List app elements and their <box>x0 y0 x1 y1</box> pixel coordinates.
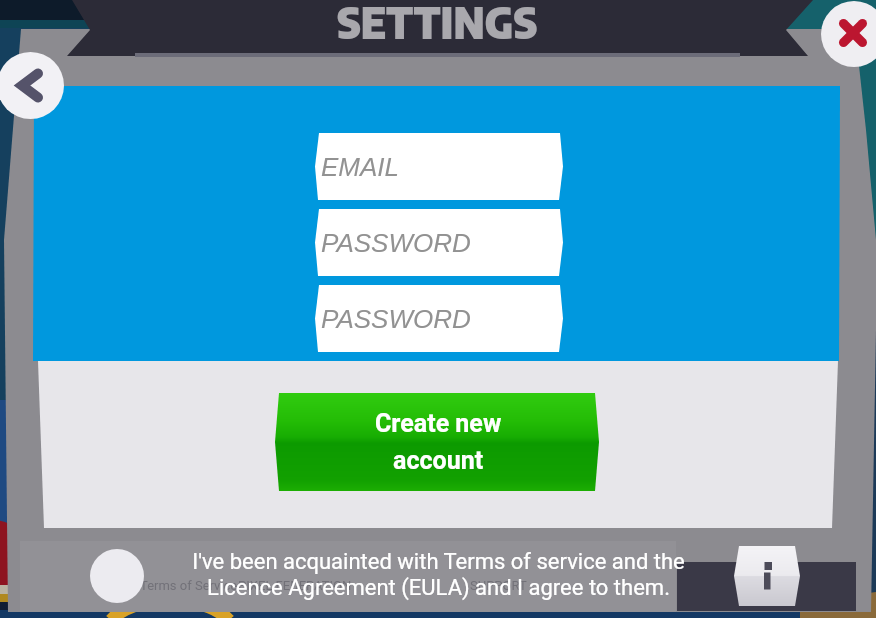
button[interactable]: Create new <box>277 392 599 492</box>
button[interactable]: Version <box>780 578 824 593</box>
staticText: PASSWORD <box>321 228 471 257</box>
staticText: I've been acquainted with Terms of servi… <box>192 549 685 575</box>
staticText: Terms of Service <box>140 578 238 593</box>
button[interactable]: Close <box>821 1 876 67</box>
button[interactable]: Info <box>734 546 800 606</box>
button[interactable]: Terms notice <box>20 541 676 612</box>
button[interactable]: PASSWORD <box>315 285 563 352</box>
button[interactable]: Back <box>0 52 64 119</box>
staticText: account <box>393 446 484 475</box>
button[interactable]: Agree checkbox <box>90 549 144 603</box>
button[interactable]: SUPPORT <box>470 578 527 593</box>
staticText: Version <box>780 578 824 593</box>
staticText: SUPPORT <box>470 578 527 593</box>
button[interactable]: Terms of Service <box>140 578 238 593</box>
staticText: PASSWORD <box>321 304 471 333</box>
staticText: Create new <box>375 409 502 438</box>
staticText: PIXEL FEDERATION <box>238 578 352 593</box>
staticText: EMAIL <box>321 152 400 181</box>
button[interactable]: EMAIL <box>315 133 563 200</box>
staticText: SETTINGS <box>337 0 538 42</box>
staticText: Licence Agreement (EULA) and I agree to … <box>207 575 670 601</box>
button[interactable]: PASSWORD <box>315 209 563 276</box>
button[interactable]: PIXEL FEDERATION <box>238 578 352 593</box>
